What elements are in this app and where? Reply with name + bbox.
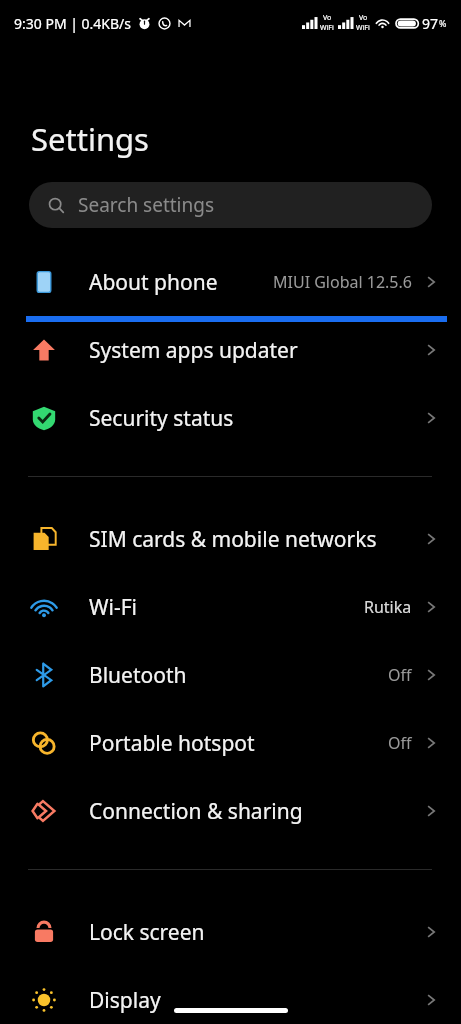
button[interactable]: Bluetooth [0, 651, 461, 699]
staticText: Search settings [78, 192, 215, 218]
staticText: Connection & sharing [89, 797, 303, 826]
staticText: SIM cards & mobile networks [89, 525, 377, 554]
staticText: Wi-Fi [89, 593, 138, 622]
staticText: Rutika [364, 596, 412, 618]
staticText: Security status [89, 404, 234, 433]
staticText: Settings [31, 118, 149, 160]
staticText: % [439, 17, 447, 29]
staticText: Off [388, 732, 412, 754]
button[interactable]: Search settings [29, 182, 432, 228]
button[interactable]: Connection & sharing [0, 787, 461, 835]
staticText: 9:30 PM | 0.4KB/s [14, 14, 132, 33]
staticText: Vo [359, 13, 368, 23]
button[interactable]: Lock screen [0, 908, 461, 956]
button[interactable]: Security status [0, 394, 461, 442]
staticText: Lock screen [89, 918, 205, 947]
staticText: About phone [89, 268, 218, 297]
staticText: Portable hotspot [89, 729, 255, 758]
staticText: Off [388, 664, 412, 686]
staticText: MIUI Global 12.5.6 [273, 271, 412, 293]
button[interactable]: Wi-Fi [0, 583, 461, 631]
staticText: System apps updater [89, 336, 298, 365]
staticText: Bluetooth [89, 661, 187, 690]
staticText: WiFi [320, 23, 334, 33]
button[interactable]: Portable hotspot [0, 719, 461, 767]
staticText: 97 [422, 14, 439, 33]
button[interactable]: System apps updater [0, 326, 461, 374]
button[interactable]: SIM cards & mobile networks [0, 515, 461, 563]
button[interactable]: About phone [0, 258, 461, 306]
staticText: WiFi [356, 23, 370, 33]
staticText: Vo [323, 13, 332, 23]
staticText: Display [89, 986, 161, 1015]
button[interactable]: Display [0, 976, 461, 1024]
